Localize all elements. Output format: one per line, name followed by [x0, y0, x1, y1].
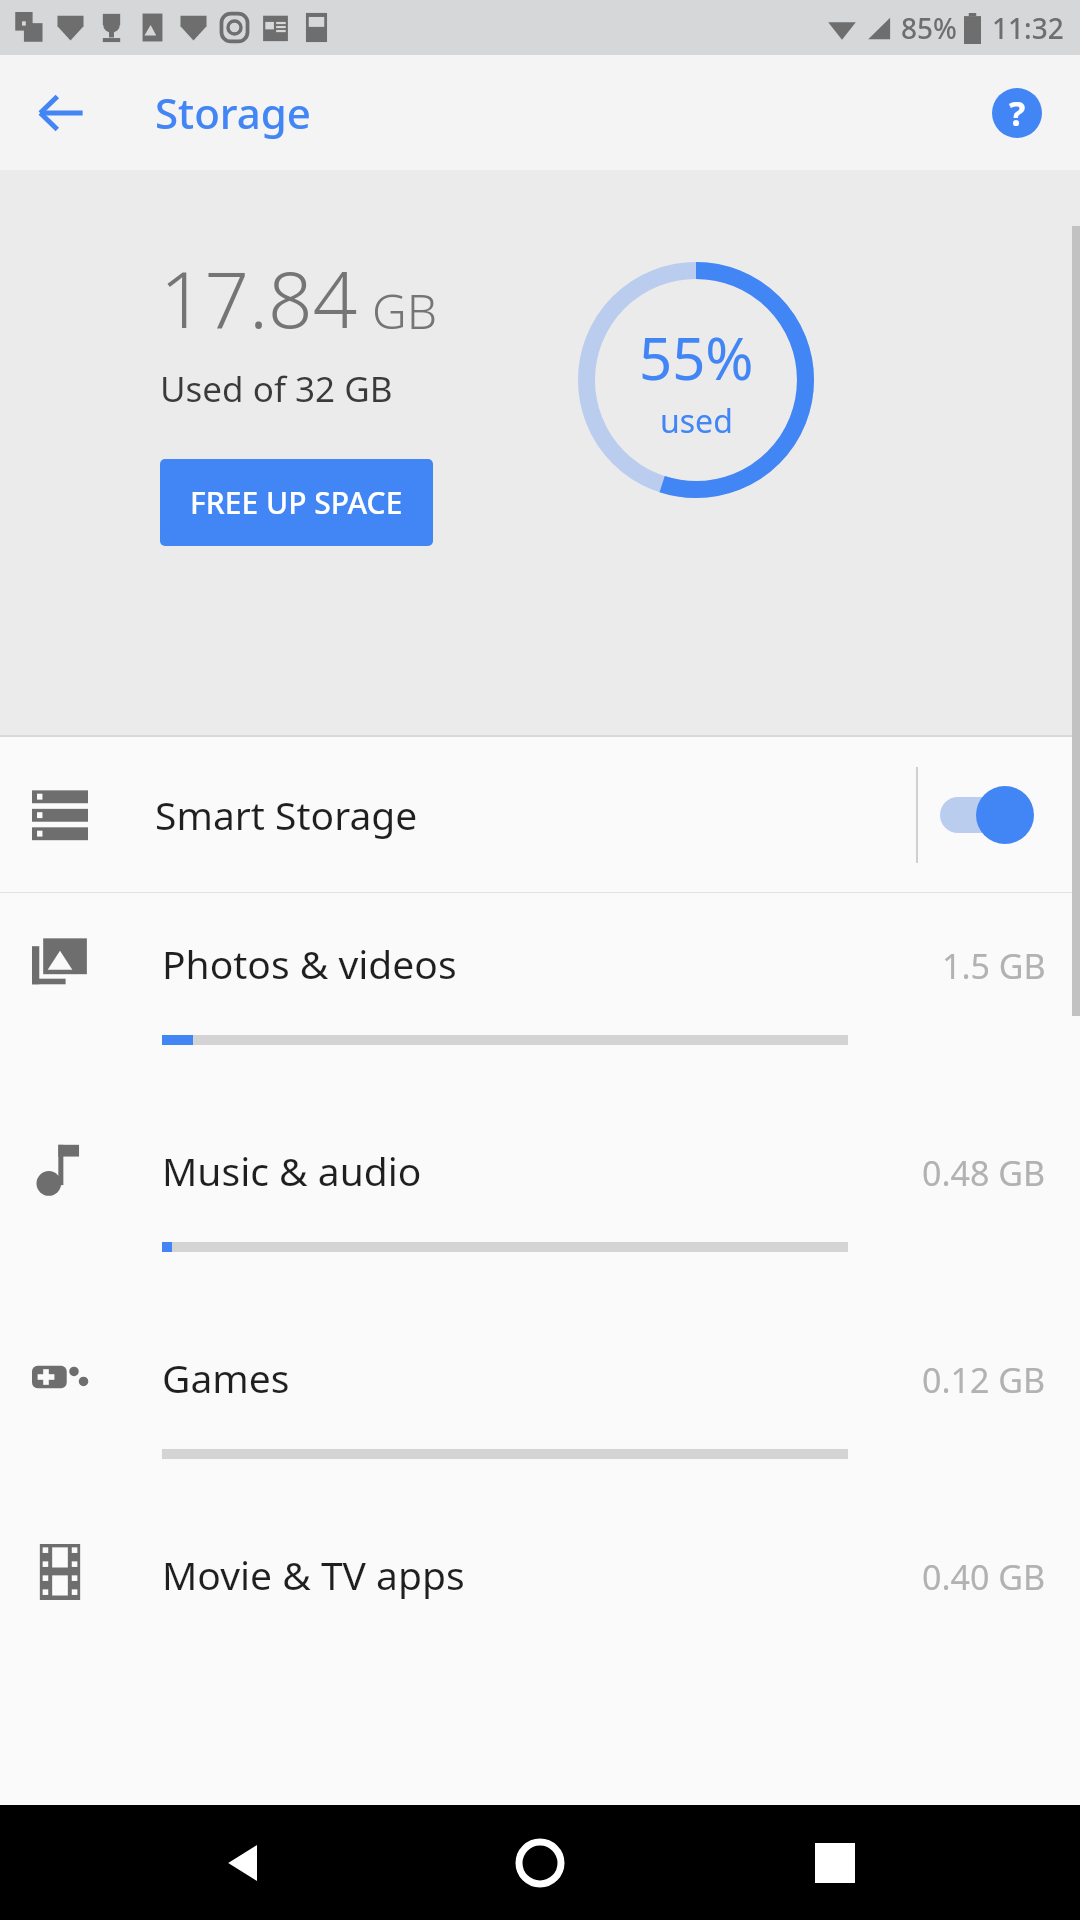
staticText: 1.5 GB	[942, 943, 1046, 989]
button[interactable]: FREE UP SPACE	[160, 459, 433, 546]
button[interactable]: Help	[980, 76, 1054, 150]
button[interactable]: Back	[20, 72, 102, 154]
staticText: used	[660, 399, 733, 443]
staticText: Storage	[155, 84, 311, 141]
staticText: 11:32	[992, 9, 1064, 47]
button[interactable]: Back	[195, 1813, 295, 1913]
staticText: Movie & TV apps	[162, 1548, 465, 1601]
button[interactable]: Movie & TV apps	[0, 1514, 1080, 1606]
button[interactable]: Photos & videos	[0, 893, 1080, 1100]
staticText: GB	[372, 278, 438, 343]
button[interactable]: Smart Storage toggle	[930, 773, 1050, 857]
button[interactable]: Recent apps	[785, 1813, 885, 1913]
staticText: 85%	[901, 9, 957, 47]
staticText: Music & audio	[162, 1144, 422, 1197]
button[interactable]: Home	[490, 1813, 590, 1913]
staticText: Smart Storage	[155, 788, 418, 841]
button[interactable]: Games	[0, 1307, 1080, 1514]
staticText: ?	[1009, 90, 1026, 136]
staticText: Games	[162, 1351, 290, 1404]
staticText: 0.48 GB	[922, 1150, 1046, 1196]
staticText: 0.12 GB	[922, 1357, 1046, 1403]
staticText: 0.40 GB	[922, 1554, 1046, 1600]
staticText: 55%	[639, 318, 754, 397]
staticText: Used of 32 GB	[160, 365, 393, 413]
staticText: FREE UP SPACE	[190, 482, 403, 523]
staticText: Photos & videos	[162, 937, 457, 990]
button[interactable]: Smart Storage	[0, 737, 1080, 892]
staticText: 17.84	[160, 245, 358, 351]
button[interactable]: Music & audio	[0, 1100, 1080, 1307]
